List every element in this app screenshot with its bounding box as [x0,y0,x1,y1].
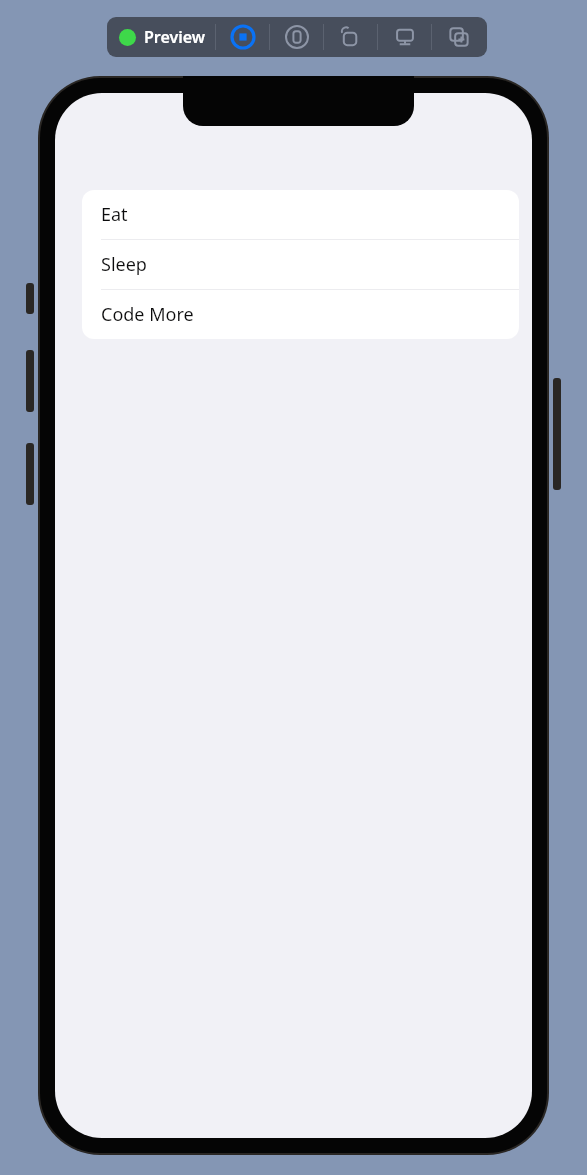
button[interactable]: Duplicate preview [432,17,485,57]
button[interactable]: Device settings [270,17,323,57]
button[interactable]: Desktop preview [378,17,431,57]
button[interactable]: Preview [107,17,215,57]
button[interactable]: Sleep [82,240,519,289]
staticText: Sleep [101,252,147,277]
staticText: Code More [101,302,194,327]
staticText: Eat [101,202,128,227]
button[interactable]: Code More [82,290,519,339]
staticText: Preview [144,26,206,48]
button[interactable]: Stop preview [216,17,269,57]
button[interactable]: Eat [82,190,519,239]
button[interactable]: Rotate device [324,17,377,57]
